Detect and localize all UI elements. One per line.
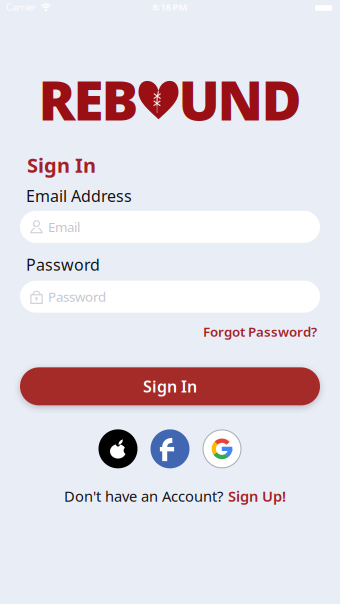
- staticText: 8:18 PM: [152, 1, 187, 13]
- button[interactable]: Password: [20, 281, 320, 313]
- button[interactable]: Sign in with Google: [202, 429, 241, 468]
- staticText: REB: [38, 63, 138, 136]
- button[interactable]: Forgot Password?: [203, 323, 317, 340]
- button[interactable]: Sign Up!: [228, 486, 286, 506]
- staticText: Sign Up!: [228, 486, 286, 506]
- button[interactable]: Sign in with Apple: [98, 429, 137, 468]
- staticText: Sign In: [143, 376, 197, 397]
- staticText: Password: [48, 288, 106, 305]
- staticText: UND: [178, 63, 301, 136]
- staticText: Forgot Password?: [203, 323, 317, 340]
- staticText: Carrier: [6, 1, 36, 13]
- button[interactable]: Email: [20, 211, 320, 243]
- staticText: Sign In: [27, 152, 96, 178]
- button[interactable]: Sign in with Facebook: [150, 429, 189, 468]
- button[interactable]: Sign In: [20, 367, 320, 405]
- staticText: Password: [26, 254, 100, 275]
- staticText: Don't have an Account?: [64, 486, 223, 506]
- staticText: Email Address: [26, 185, 132, 206]
- staticText: Email: [48, 218, 80, 236]
